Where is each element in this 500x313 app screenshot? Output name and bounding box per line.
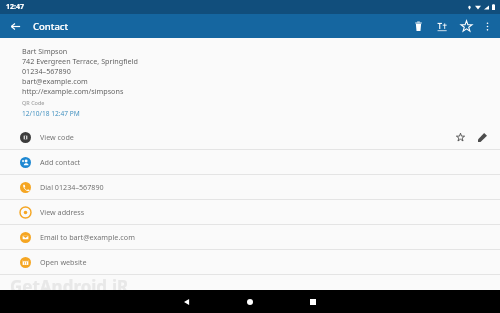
staticText: View code	[40, 132, 74, 142]
staticText: 742 Evergreen Terrace, Springfield	[22, 56, 138, 66]
button[interactable]: View code	[0, 125, 500, 149]
staticText: http://example.com/simpsons	[22, 86, 124, 96]
staticText: View address	[40, 207, 85, 217]
staticText: QR Code	[22, 99, 45, 106]
button[interactable]: Email to bart@example.com	[0, 225, 500, 249]
staticText: 01234–567890	[22, 66, 71, 76]
button[interactable]: Back	[5, 16, 25, 36]
staticText: bart@example.com	[22, 76, 88, 86]
staticText: GetAndroid.iR	[10, 275, 129, 290]
staticText: Contact	[33, 20, 69, 33]
button[interactable]: View address	[0, 200, 500, 224]
button[interactable]: Dial 01234–567890	[0, 175, 500, 199]
button[interactable]: Back	[176, 291, 198, 313]
button[interactable]: Recents	[302, 291, 324, 313]
button[interactable]: Text format	[433, 17, 451, 35]
button[interactable]: Delete	[409, 17, 427, 35]
staticText: Open website	[40, 257, 87, 267]
staticText: 12/10/18 12:47 PM	[22, 109, 80, 118]
button[interactable]: Edit	[474, 129, 490, 145]
staticText: 12:47	[6, 2, 24, 12]
button[interactable]: More options	[478, 17, 496, 35]
staticText: Bart Simpson	[22, 46, 68, 56]
button[interactable]: Favorite	[457, 17, 475, 35]
staticText: Email to bart@example.com	[40, 232, 135, 242]
staticText: Dial 01234–567890	[40, 182, 104, 192]
staticText: Add contact	[40, 157, 81, 167]
button[interactable]: Home	[239, 291, 261, 313]
button[interactable]: Add contact	[0, 150, 500, 174]
button[interactable]: Open website	[0, 250, 500, 274]
button[interactable]: Star	[452, 129, 468, 145]
